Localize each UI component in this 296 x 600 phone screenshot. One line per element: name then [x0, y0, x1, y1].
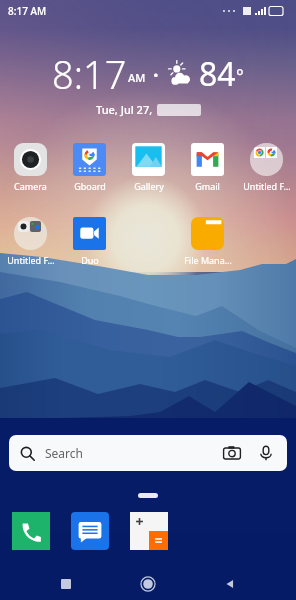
button[interactable]: Messages: [71, 512, 109, 550]
button[interactable]: Recents: [50, 568, 82, 600]
staticText: File Mana…: [184, 254, 232, 266]
button[interactable]: Gmail: [178, 143, 237, 192]
staticText: 8:17 AM: [8, 4, 47, 18]
staticText: Duo: [81, 254, 99, 266]
button[interactable]: Duo: [60, 217, 119, 266]
staticText: Tue, Jul 27,: [96, 102, 153, 117]
staticText: Untitled F…: [243, 180, 291, 192]
staticText: °: [236, 64, 244, 89]
button[interactable]: Home: [132, 568, 164, 600]
staticText: Untitled F…: [7, 254, 55, 266]
button[interactable]: Gallery: [119, 143, 178, 192]
button[interactable]: Untitled F…: [1, 217, 60, 266]
staticText: 8:17: [52, 48, 127, 100]
staticText: ·: [153, 61, 159, 88]
button[interactable]: Gboard: [60, 143, 119, 192]
staticText: AM: [128, 70, 146, 85]
button[interactable]: Search: [9, 435, 287, 471]
button[interactable]: Back: [214, 568, 246, 600]
staticText: Gboard: [74, 180, 106, 192]
button[interactable]: Camera: [1, 143, 60, 192]
button[interactable]: File Mana…: [178, 217, 237, 266]
staticText: Search: [45, 445, 83, 461]
staticText: 84: [199, 52, 236, 96]
staticText: Gallery: [134, 180, 164, 192]
button[interactable]: Untitled F…: [237, 143, 296, 192]
button[interactable]: Phone: [12, 512, 50, 550]
button[interactable]: Voice search: [256, 443, 276, 463]
button[interactable]: Google Lens: [222, 443, 242, 463]
button[interactable]: Calculator: [130, 512, 168, 550]
staticText: Camera: [14, 180, 47, 192]
staticText: Gmail: [195, 180, 220, 192]
